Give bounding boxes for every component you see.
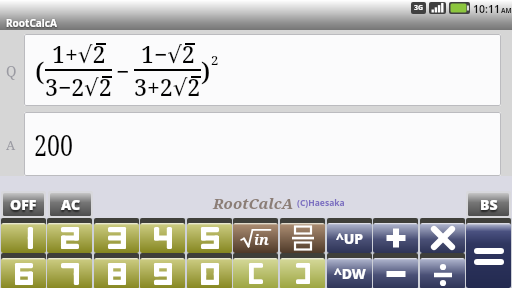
- button[interactable]: [233, 253, 278, 288]
- staticText: 1−√2: [141, 38, 195, 69]
- button[interactable]: OFF: [1, 191, 46, 218]
- button[interactable]: [280, 253, 325, 288]
- staticText: OFF: [10, 195, 37, 214]
- button[interactable]: [140, 253, 185, 288]
- button[interactable]: [187, 218, 232, 253]
- staticText: 3+2√2: [134, 71, 201, 102]
- button[interactable]: [94, 218, 139, 253]
- button[interactable]: AC: [48, 191, 93, 218]
- button[interactable]: [420, 218, 465, 253]
- staticText: Q: [6, 61, 17, 80]
- staticText: ^UP: [336, 229, 364, 248]
- button[interactable]: [94, 253, 139, 288]
- button[interactable]: [420, 253, 465, 288]
- staticText: AC: [61, 195, 80, 214]
- staticText: 10:11: [473, 2, 500, 16]
- button[interactable]: BS: [466, 191, 511, 218]
- button[interactable]: [373, 253, 418, 288]
- staticText: 200: [34, 125, 73, 164]
- button[interactable]: [1, 253, 46, 288]
- staticText: (C)Haesaka: [297, 197, 345, 209]
- staticText: 1+√2: [52, 38, 106, 69]
- staticText: in: [254, 229, 269, 249]
- button[interactable]: ^UP: [327, 218, 372, 253]
- button[interactable]: in: [233, 218, 278, 253]
- button[interactable]: [373, 218, 418, 253]
- button[interactable]: [187, 253, 232, 288]
- button[interactable]: [47, 218, 92, 253]
- staticText: AM: [501, 6, 512, 15]
- button[interactable]: [466, 218, 511, 288]
- button[interactable]: [1, 218, 46, 253]
- staticText: (: [35, 53, 45, 88]
- button[interactable]: [47, 253, 92, 288]
- staticText: A: [6, 136, 16, 154]
- staticText: 2: [211, 51, 219, 69]
- staticText: RootCalcA: [213, 193, 293, 213]
- staticText: ): [201, 53, 211, 88]
- staticText: −: [116, 55, 130, 86]
- staticText: ^DW: [334, 264, 366, 283]
- button[interactable]: [140, 218, 185, 253]
- staticText: 3G: [414, 3, 424, 13]
- button[interactable]: [280, 218, 325, 253]
- staticText: BS: [480, 195, 498, 214]
- staticText: RootCalcA: [6, 16, 57, 30]
- staticText: 3−2√2: [45, 71, 112, 102]
- button[interactable]: ^DW: [327, 253, 372, 288]
